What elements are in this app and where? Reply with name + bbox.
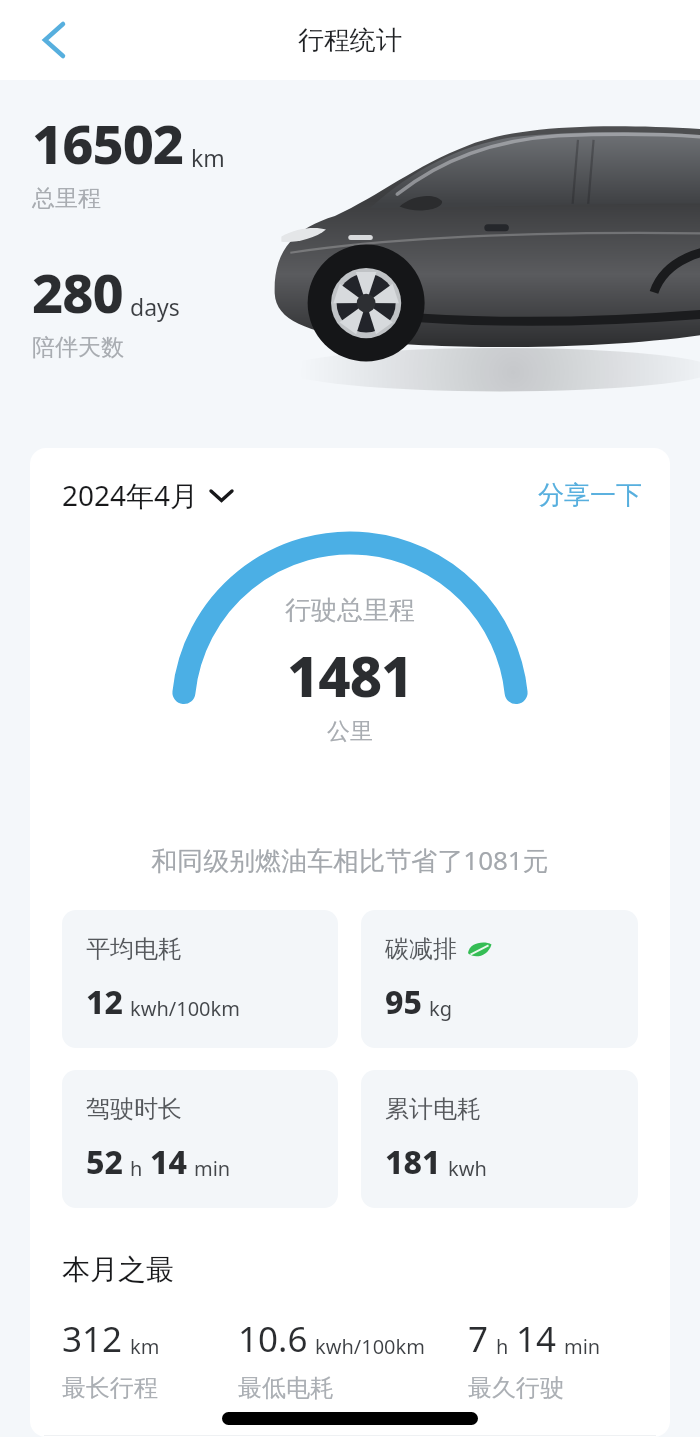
button[interactable]: Back <box>0 2 76 78</box>
staticText: 公里 <box>327 717 373 746</box>
staticText: 14 <box>516 1315 557 1363</box>
button[interactable]: 驾驶时长 <box>62 1070 338 1208</box>
staticText: 12 <box>86 980 123 1024</box>
staticText: 最长行程 <box>62 1373 158 1403</box>
staticText: 总里程 <box>32 184 101 213</box>
staticText: 16502 <box>32 106 184 180</box>
staticText: 陪伴天数 <box>32 333 124 362</box>
staticText: kwh/100km <box>130 995 240 1022</box>
staticText: 14 <box>150 1140 187 1184</box>
staticText: 最低电耗 <box>238 1373 334 1403</box>
staticText: 52 <box>86 1140 123 1184</box>
staticText: 碳减排 <box>385 934 457 964</box>
staticText: km <box>191 142 225 173</box>
staticText: 7 <box>468 1315 489 1363</box>
staticText: h <box>130 1155 143 1182</box>
staticText: kwh/100km <box>315 1333 425 1360</box>
staticText: 280 <box>32 255 123 329</box>
staticText: min <box>564 1333 601 1360</box>
staticText: 平均电耗 <box>86 934 182 964</box>
staticText: 和同级别燃油车相比节省了1081元 <box>30 842 670 878</box>
staticText: 行程统计 <box>298 24 402 57</box>
button[interactable]: 分享一下 <box>538 479 642 512</box>
button[interactable]: 累计电耗 <box>361 1070 638 1208</box>
staticText: days <box>130 291 180 322</box>
staticText: h <box>496 1333 509 1360</box>
staticText: 312 <box>62 1315 123 1363</box>
staticText: 10.6 <box>238 1315 308 1363</box>
button[interactable]: 平均电耗 <box>62 910 338 1048</box>
staticText: kwh <box>448 1155 487 1182</box>
staticText: 驾驶时长 <box>86 1094 182 1124</box>
staticText: 2024年4月 <box>62 476 199 514</box>
staticText: 95 <box>385 980 422 1024</box>
staticText: 本月之最 <box>62 1252 174 1287</box>
staticText: 累计电耗 <box>385 1094 481 1124</box>
staticText: 分享一下 <box>538 479 642 512</box>
staticText: min <box>194 1155 231 1182</box>
staticText: 1481 <box>287 637 413 713</box>
button[interactable]: 碳减排 <box>361 910 638 1048</box>
staticText: 181 <box>385 1140 441 1184</box>
staticText: 行驶总里程 <box>285 594 415 627</box>
button[interactable]: 2024年4月 <box>62 476 232 514</box>
staticText: km <box>130 1333 160 1360</box>
staticText: kg <box>429 995 452 1022</box>
staticText: 最久行驶 <box>468 1373 564 1403</box>
